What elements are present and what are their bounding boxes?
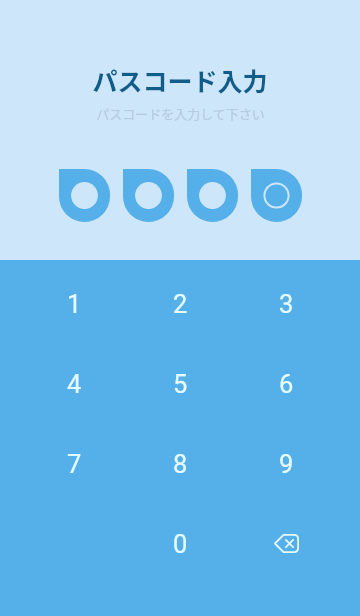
- button[interactable]: 0: [127, 500, 233, 580]
- other: Digit 1 entered: [59, 169, 110, 222]
- other: Digit 3 entered: [187, 169, 238, 222]
- staticText: 8: [173, 449, 188, 479]
- staticText: パスコードを入力して下さい: [96, 104, 265, 123]
- button[interactable]: 5: [127, 340, 233, 420]
- staticText: 7: [67, 449, 82, 479]
- other: Digit 2 entered: [123, 169, 174, 222]
- staticText: 9: [279, 449, 294, 479]
- button[interactable]: 1: [21, 260, 127, 340]
- staticText: 2: [173, 289, 188, 319]
- staticText: 4: [67, 369, 82, 399]
- button[interactable]: Delete: [233, 500, 339, 580]
- button[interactable]: 2: [127, 260, 233, 340]
- staticText: 1: [67, 289, 82, 319]
- staticText: 3: [279, 289, 294, 319]
- staticText: 5: [173, 369, 188, 399]
- button[interactable]: 8: [127, 420, 233, 500]
- button[interactable]: 7: [21, 420, 127, 500]
- button[interactable]: 4: [21, 340, 127, 420]
- button[interactable]: 9: [233, 420, 339, 500]
- button[interactable]: 6: [233, 340, 339, 420]
- staticText: 6: [279, 369, 294, 399]
- staticText: 0: [173, 529, 188, 559]
- other: Digit 4 empty: [251, 169, 302, 222]
- staticText: パスコード入力: [92, 62, 268, 96]
- button[interactable]: 3: [233, 260, 339, 340]
